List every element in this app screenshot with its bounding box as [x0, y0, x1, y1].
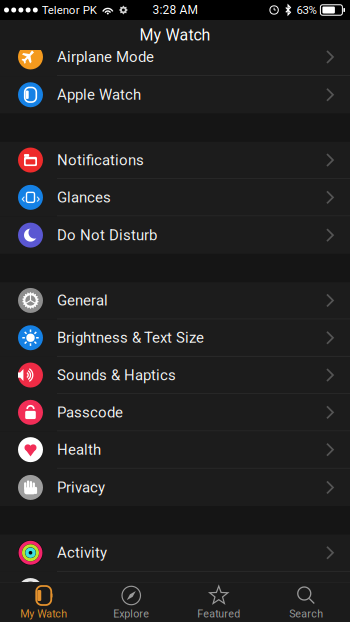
- button[interactable]: Sounds & Haptics: [0, 357, 350, 394]
- staticText: 63%: [296, 3, 316, 17]
- button[interactable]: Health: [0, 431, 350, 469]
- staticText: Glances: [57, 189, 111, 206]
- staticText: 3:28 AM: [152, 3, 197, 17]
- staticText: Featured: [197, 607, 240, 620]
- staticText: General: [57, 292, 108, 309]
- staticText: Activity: [57, 544, 107, 561]
- staticText: Sounds & Haptics: [57, 366, 176, 384]
- button[interactable]: Search: [262, 580, 350, 622]
- staticText: ‹: [21, 188, 25, 206]
- button[interactable]: Featured: [175, 580, 262, 622]
- staticText: Passcode: [57, 404, 123, 421]
- staticText: Telenor PK: [42, 3, 97, 17]
- staticText: Explore: [113, 607, 149, 620]
- button[interactable]: ‹: [0, 179, 350, 216]
- staticText: Search: [289, 607, 323, 620]
- staticText: Apple Watch: [57, 86, 141, 103]
- button[interactable]: My Watch: [0, 580, 87, 622]
- staticText: Notifications: [57, 151, 144, 169]
- staticText: Health: [57, 441, 101, 458]
- button[interactable]: Passcode: [0, 394, 350, 431]
- button[interactable]: Brightness & Text Size: [0, 320, 350, 357]
- button[interactable]: Apple Watch: [0, 76, 350, 113]
- button[interactable]: Privacy: [0, 469, 350, 506]
- staticText: My Watch: [20, 607, 67, 620]
- staticText: My Watch: [139, 26, 210, 44]
- staticText: Airplane Mode: [57, 48, 154, 66]
- button[interactable]: Do Not Disturb: [0, 216, 350, 254]
- button[interactable]: Explore: [87, 580, 175, 622]
- button[interactable]: Activity: [0, 535, 350, 572]
- button[interactable]: Notifications: [0, 142, 350, 179]
- button[interactable]: General: [0, 282, 350, 320]
- staticText: Privacy: [57, 479, 105, 496]
- button[interactable]: Workout: [0, 572, 350, 609]
- staticText: Do Not Disturb: [57, 226, 157, 244]
- staticText: ›: [36, 188, 40, 206]
- staticText: Brightness & Text Size: [57, 329, 204, 346]
- button[interactable]: Airplane Mode: [0, 39, 350, 76]
